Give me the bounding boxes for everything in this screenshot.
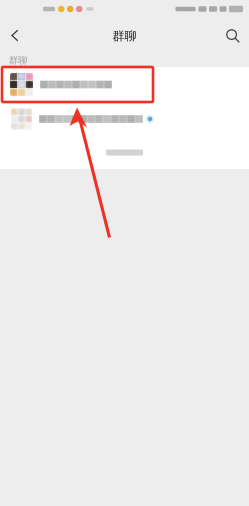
button[interactable] bbox=[0, 67, 249, 102]
button[interactable]: Search bbox=[217, 18, 249, 54]
button[interactable] bbox=[0, 102, 249, 136]
staticText: 群聊 bbox=[9, 55, 27, 66]
button[interactable]: Back bbox=[0, 18, 30, 54]
staticText: 群聊 bbox=[112, 29, 136, 43]
